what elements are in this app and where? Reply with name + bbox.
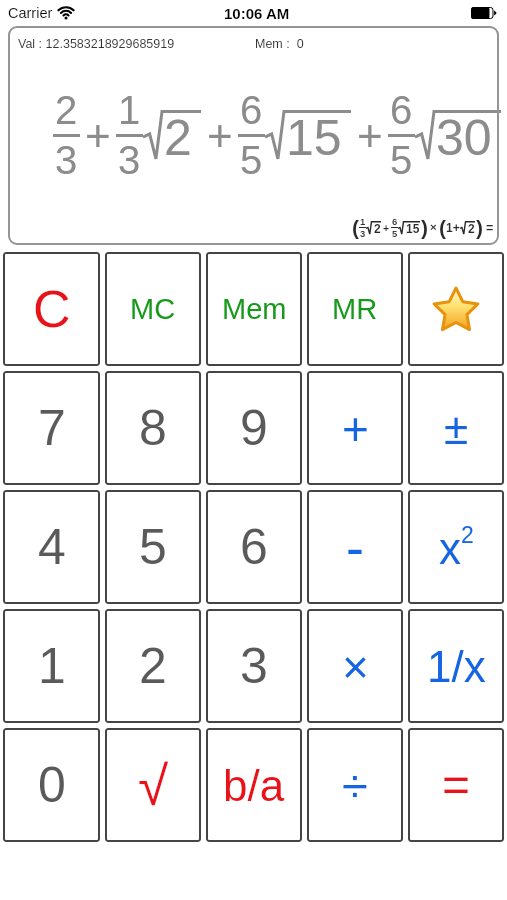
staticText: 5: [390, 138, 413, 183]
staticText: 1: [38, 638, 66, 694]
button[interactable]: 6: [206, 490, 302, 604]
staticText: MC: [130, 293, 176, 325]
staticText: ÷: [342, 759, 368, 812]
staticText: Mem: [222, 293, 287, 325]
staticText: 8: [139, 400, 167, 456]
staticText: 5: [240, 138, 263, 183]
staticText: Mem : 0: [255, 37, 304, 51]
button[interactable]: 0: [3, 728, 100, 842]
staticText: 9: [240, 400, 268, 456]
button[interactable]: Mem: [206, 252, 302, 366]
button[interactable]: 7: [3, 371, 100, 485]
staticText: (: [439, 216, 446, 239]
button[interactable]: 9: [206, 371, 302, 485]
button[interactable]: 3: [206, 609, 302, 723]
button[interactable]: =: [408, 728, 504, 842]
staticText: 2: [374, 222, 381, 235]
staticText: -: [346, 517, 364, 577]
staticText: 5: [392, 228, 398, 239]
button[interactable]: MC: [105, 252, 201, 366]
staticText: ±: [444, 404, 469, 453]
staticText: b/a: [223, 761, 285, 810]
button[interactable]: -: [307, 490, 403, 604]
staticText: 1: [118, 88, 141, 133]
staticText: 6: [240, 519, 268, 575]
button[interactable]: 4: [3, 490, 100, 604]
staticText: Carrier: [8, 5, 53, 21]
staticText: 15: [406, 222, 420, 235]
staticText: 1/x: [427, 642, 486, 691]
staticText: 6: [392, 216, 398, 227]
staticText: 1: [360, 216, 366, 227]
staticText: x: [439, 524, 461, 573]
staticText: 3: [55, 138, 78, 183]
staticText: 6: [390, 88, 413, 133]
button[interactable]: 1: [3, 609, 100, 723]
staticText: 5: [139, 519, 167, 575]
staticText: 6: [240, 88, 263, 133]
staticText: +: [342, 403, 369, 454]
button[interactable]: [408, 252, 504, 366]
staticText: ): [421, 216, 428, 239]
staticText: C: [33, 280, 71, 338]
staticText: MR: [332, 293, 378, 325]
staticText: +: [357, 111, 383, 160]
button[interactable]: 2: [105, 609, 201, 723]
staticText: 3: [118, 138, 141, 183]
staticText: 2: [461, 522, 474, 548]
staticText: ×: [342, 641, 369, 692]
staticText: +: [85, 111, 111, 160]
staticText: ×: [430, 221, 437, 234]
staticText: 4: [38, 519, 66, 575]
staticText: √: [138, 755, 169, 816]
staticText: +: [383, 222, 390, 234]
button[interactable]: 5: [105, 490, 201, 604]
staticText: (: [352, 216, 359, 239]
button[interactable]: ÷: [307, 728, 403, 842]
button[interactable]: ±: [408, 371, 504, 485]
button[interactable]: x: [408, 490, 504, 604]
button[interactable]: √: [105, 728, 201, 842]
staticText: 2: [139, 638, 167, 694]
staticText: ): [476, 216, 483, 239]
button[interactable]: MR: [307, 252, 403, 366]
button[interactable]: C: [3, 252, 100, 366]
staticText: 2: [55, 88, 78, 133]
staticText: 3: [240, 638, 268, 694]
staticText: 0: [38, 757, 66, 813]
staticText: 2: [164, 110, 192, 160]
button[interactable]: ×: [307, 609, 403, 723]
staticText: 30: [436, 110, 492, 160]
button[interactable]: b/a: [206, 728, 302, 842]
staticText: 7: [38, 400, 66, 456]
staticText: =: [442, 758, 471, 812]
button[interactable]: +: [307, 371, 403, 485]
staticText: 3: [360, 228, 366, 239]
button[interactable]: 8: [105, 371, 201, 485]
staticText: 1+: [446, 221, 460, 234]
staticText: 10:06 AM: [224, 5, 290, 22]
staticText: +: [207, 111, 233, 160]
staticText: =: [486, 221, 494, 235]
staticText: 15: [286, 110, 342, 160]
staticText: Val : 12.3583218929685919: [18, 37, 175, 51]
staticText: 2: [468, 222, 475, 235]
button[interactable]: 1/x: [408, 609, 504, 723]
